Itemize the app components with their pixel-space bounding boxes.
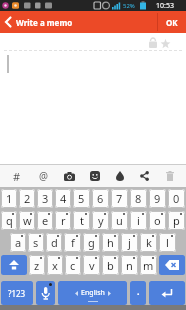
button[interactable]: h (102, 233, 119, 252)
button[interactable]: x (47, 255, 63, 275)
button[interactable]: f (64, 233, 81, 252)
button[interactable]: b (102, 255, 119, 275)
button[interactable]: 8 (130, 189, 147, 208)
staticText: h (107, 235, 114, 250)
button[interactable]: # (4, 165, 30, 187)
staticText: d (51, 235, 58, 250)
staticText: 7 (116, 191, 123, 206)
button[interactable]: d (46, 233, 62, 252)
button[interactable]: y (92, 211, 109, 230)
staticText: s (33, 235, 39, 250)
button[interactable]: . (130, 281, 146, 305)
staticText: n (126, 258, 133, 273)
staticText: 1 (6, 191, 13, 206)
staticText: 6 (97, 191, 104, 206)
button[interactable] (1, 255, 27, 275)
staticText: r (61, 213, 66, 228)
button[interactable]: 9 (149, 189, 166, 208)
staticText: k (146, 235, 152, 250)
staticText: m (143, 258, 154, 273)
staticText: j (128, 235, 131, 250)
button[interactable]: r (55, 211, 71, 230)
button[interactable]: OK (158, 11, 186, 33)
button[interactable]: @ (30, 165, 56, 187)
staticText: q (6, 213, 13, 228)
button[interactable] (157, 165, 182, 187)
staticText: 2 (24, 191, 31, 206)
button[interactable]: z (29, 255, 45, 275)
button[interactable]: l (159, 233, 176, 252)
button[interactable]: 7 (111, 189, 128, 208)
staticText: b (107, 258, 114, 273)
staticText: Write a memo (16, 17, 73, 28)
button[interactable]: English (58, 281, 127, 305)
button[interactable] (36, 281, 55, 305)
staticText: 10:53 (156, 1, 174, 11)
staticText: ?123 (8, 288, 26, 299)
staticText: 52% (123, 2, 135, 10)
button[interactable] (149, 281, 185, 305)
staticText: 5 (78, 191, 85, 206)
button[interactable]: 3 (37, 189, 53, 208)
staticText: 4 (60, 191, 67, 206)
button[interactable]: j (121, 233, 138, 252)
button[interactable] (56, 165, 82, 187)
button[interactable]: k (140, 233, 157, 252)
staticText: y (98, 213, 104, 228)
button[interactable]: t (73, 211, 90, 230)
button[interactable]: 4 (55, 189, 71, 208)
staticText: @ (39, 169, 48, 183)
staticText: w (23, 213, 32, 228)
button[interactable]: s (28, 233, 44, 252)
staticText: OK (166, 17, 178, 28)
staticText: c (70, 258, 76, 273)
button[interactable]: o (149, 211, 166, 230)
staticText: i (137, 213, 140, 228)
staticText: g (88, 235, 95, 250)
button[interactable] (159, 255, 185, 275)
staticText: # (13, 169, 21, 184)
button[interactable]: n (121, 255, 138, 275)
staticText: 8 (135, 191, 142, 206)
button[interactable]: 1 (1, 189, 17, 208)
staticText: u (116, 213, 123, 228)
staticText: a (15, 235, 22, 250)
button[interactable]: 6 (92, 189, 109, 208)
button[interactable]: 5 (73, 189, 90, 208)
button[interactable] (82, 165, 107, 187)
staticText: 3 (42, 191, 49, 206)
button[interactable]: e (37, 211, 53, 230)
staticText: . (137, 285, 140, 297)
button[interactable]: 2 (19, 189, 35, 208)
staticText: 0 (173, 191, 180, 206)
staticText: z (34, 258, 40, 273)
button[interactable]: 0 (168, 189, 185, 208)
button[interactable] (132, 165, 157, 187)
button[interactable]: ?123 (1, 281, 33, 305)
staticText: p (173, 213, 180, 228)
staticText: l (166, 235, 169, 250)
button[interactable] (0, 33, 186, 164)
button[interactable]: p (168, 211, 185, 230)
staticText: o (154, 213, 161, 228)
staticText: x (52, 258, 58, 273)
staticText: English (81, 288, 105, 298)
button[interactable]: m (140, 255, 157, 275)
button[interactable]: Write a memo (0, 11, 73, 33)
button[interactable]: a (10, 233, 26, 252)
button[interactable]: c (65, 255, 81, 275)
button[interactable]: w (19, 211, 35, 230)
staticText: 9 (154, 191, 161, 206)
staticText: v (89, 258, 95, 273)
staticText: e (42, 213, 49, 228)
button[interactable]: g (83, 233, 100, 252)
button[interactable]: i (130, 211, 147, 230)
staticText: f (71, 235, 75, 250)
button[interactable] (107, 165, 132, 187)
button[interactable]: u (111, 211, 128, 230)
button[interactable]: v (83, 255, 100, 275)
staticText: t (80, 213, 84, 228)
button[interactable]: q (1, 211, 17, 230)
